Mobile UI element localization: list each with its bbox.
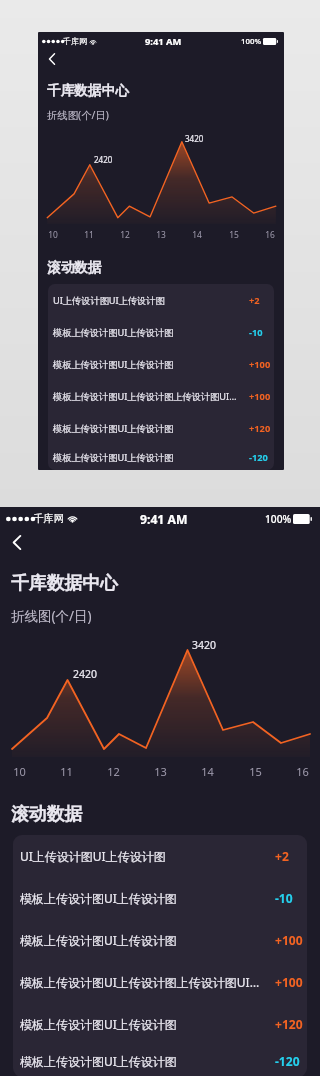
staticText: 千库数据中心 [47, 82, 129, 99]
staticText: 14 [192, 229, 202, 240]
button[interactable]: 模板上传设计图UI上传设计图 [48, 412, 274, 444]
button[interactable]: 模板上传设计图UI上传设计图上传设计图UI上传设计图 [13, 961, 307, 1003]
staticText: 100% [265, 512, 292, 526]
staticText: 9:41 AM [140, 511, 188, 526]
staticText: -10 [275, 890, 293, 906]
staticText: 模板上传设计图UI上传设计图 [53, 358, 246, 371]
staticText: 15 [249, 764, 262, 779]
button[interactable]: UI上传设计图UI上传设计图 [48, 284, 274, 316]
staticText: 16 [296, 764, 309, 779]
button[interactable]: 模板上传设计图UI上传设计图 [13, 919, 307, 961]
button[interactable]: UI上传设计图UI上传设计图 [13, 835, 307, 877]
staticText: 模板上传设计图UI上传设计图上传设计图UI上传设计图 [20, 974, 271, 990]
staticText: 折线图(个/日) [47, 108, 109, 122]
staticText: 13 [154, 764, 167, 779]
staticText: 9:41 AM [145, 35, 182, 47]
staticText: 模板上传设计图UI上传设计图 [20, 1053, 271, 1069]
staticText: UI上传设计图UI上传设计图 [20, 848, 271, 864]
staticText: +2 [275, 848, 289, 864]
staticText: 模板上传设计图UI上传设计图 [20, 932, 271, 948]
staticText: 11 [84, 229, 94, 240]
staticText: +100 [249, 358, 271, 371]
staticText: 12 [120, 229, 130, 240]
staticText: UI上传设计图UI上传设计图 [53, 294, 246, 307]
staticText: 100% [241, 36, 262, 47]
staticText: 折线图(个/日) [11, 607, 92, 625]
staticText: 3420 [185, 133, 204, 144]
staticText: 14 [201, 764, 214, 779]
button[interactable]: 模板上传设计图UI上传设计图 [48, 444, 274, 470]
staticText: -120 [249, 451, 268, 464]
staticText: 模板上传设计图UI上传设计图 [53, 451, 246, 464]
button[interactable]: 模板上传设计图UI上传设计图上传设计图UI上传设计图 [48, 380, 274, 412]
staticText: +100 [275, 932, 303, 948]
button[interactable]: Back [2, 527, 32, 557]
staticText: +2 [249, 294, 260, 307]
button[interactable]: Back [40, 47, 63, 70]
staticText: -120 [275, 1053, 300, 1069]
staticText: +120 [275, 1016, 303, 1032]
staticText: 11 [60, 764, 73, 779]
staticText: 千库网 [63, 36, 87, 46]
staticText: 千库网 [33, 512, 65, 525]
staticText: +100 [249, 390, 271, 403]
button[interactable]: 模板上传设计图UI上传设计图 [13, 1003, 307, 1045]
staticText: 15 [229, 229, 239, 240]
staticText: -10 [249, 326, 263, 339]
staticText: 滚动数据 [47, 259, 102, 276]
staticText: 2420 [94, 154, 113, 165]
staticText: 3420 [192, 638, 217, 652]
staticText: 模板上传设计图UI上传设计图 [53, 326, 246, 339]
staticText: 模板上传设计图UI上传设计图 [20, 890, 271, 906]
button[interactable]: 模板上传设计图UI上传设计图 [13, 1045, 307, 1076]
staticText: 滚动数据 [11, 803, 83, 825]
staticText: +100 [275, 974, 303, 990]
staticText: +120 [249, 422, 271, 435]
button[interactable]: 模板上传设计图UI上传设计图 [48, 316, 274, 348]
staticText: 16 [265, 229, 275, 240]
staticText: 10 [48, 229, 58, 240]
staticText: 13 [156, 229, 166, 240]
staticText: 12 [107, 764, 120, 779]
staticText: 10 [13, 764, 26, 779]
staticText: 模板上传设计图UI上传设计图 [53, 422, 246, 435]
staticText: 2420 [73, 667, 98, 681]
staticText: 模板上传设计图UI上传设计图 [20, 1016, 271, 1032]
staticText: 模板上传设计图UI上传设计图上传设计图UI上传设计图 [53, 390, 246, 403]
button[interactable]: 模板上传设计图UI上传设计图 [48, 348, 274, 380]
button[interactable]: 模板上传设计图UI上传设计图 [13, 877, 307, 919]
staticText: 千库数据中心 [11, 572, 118, 594]
